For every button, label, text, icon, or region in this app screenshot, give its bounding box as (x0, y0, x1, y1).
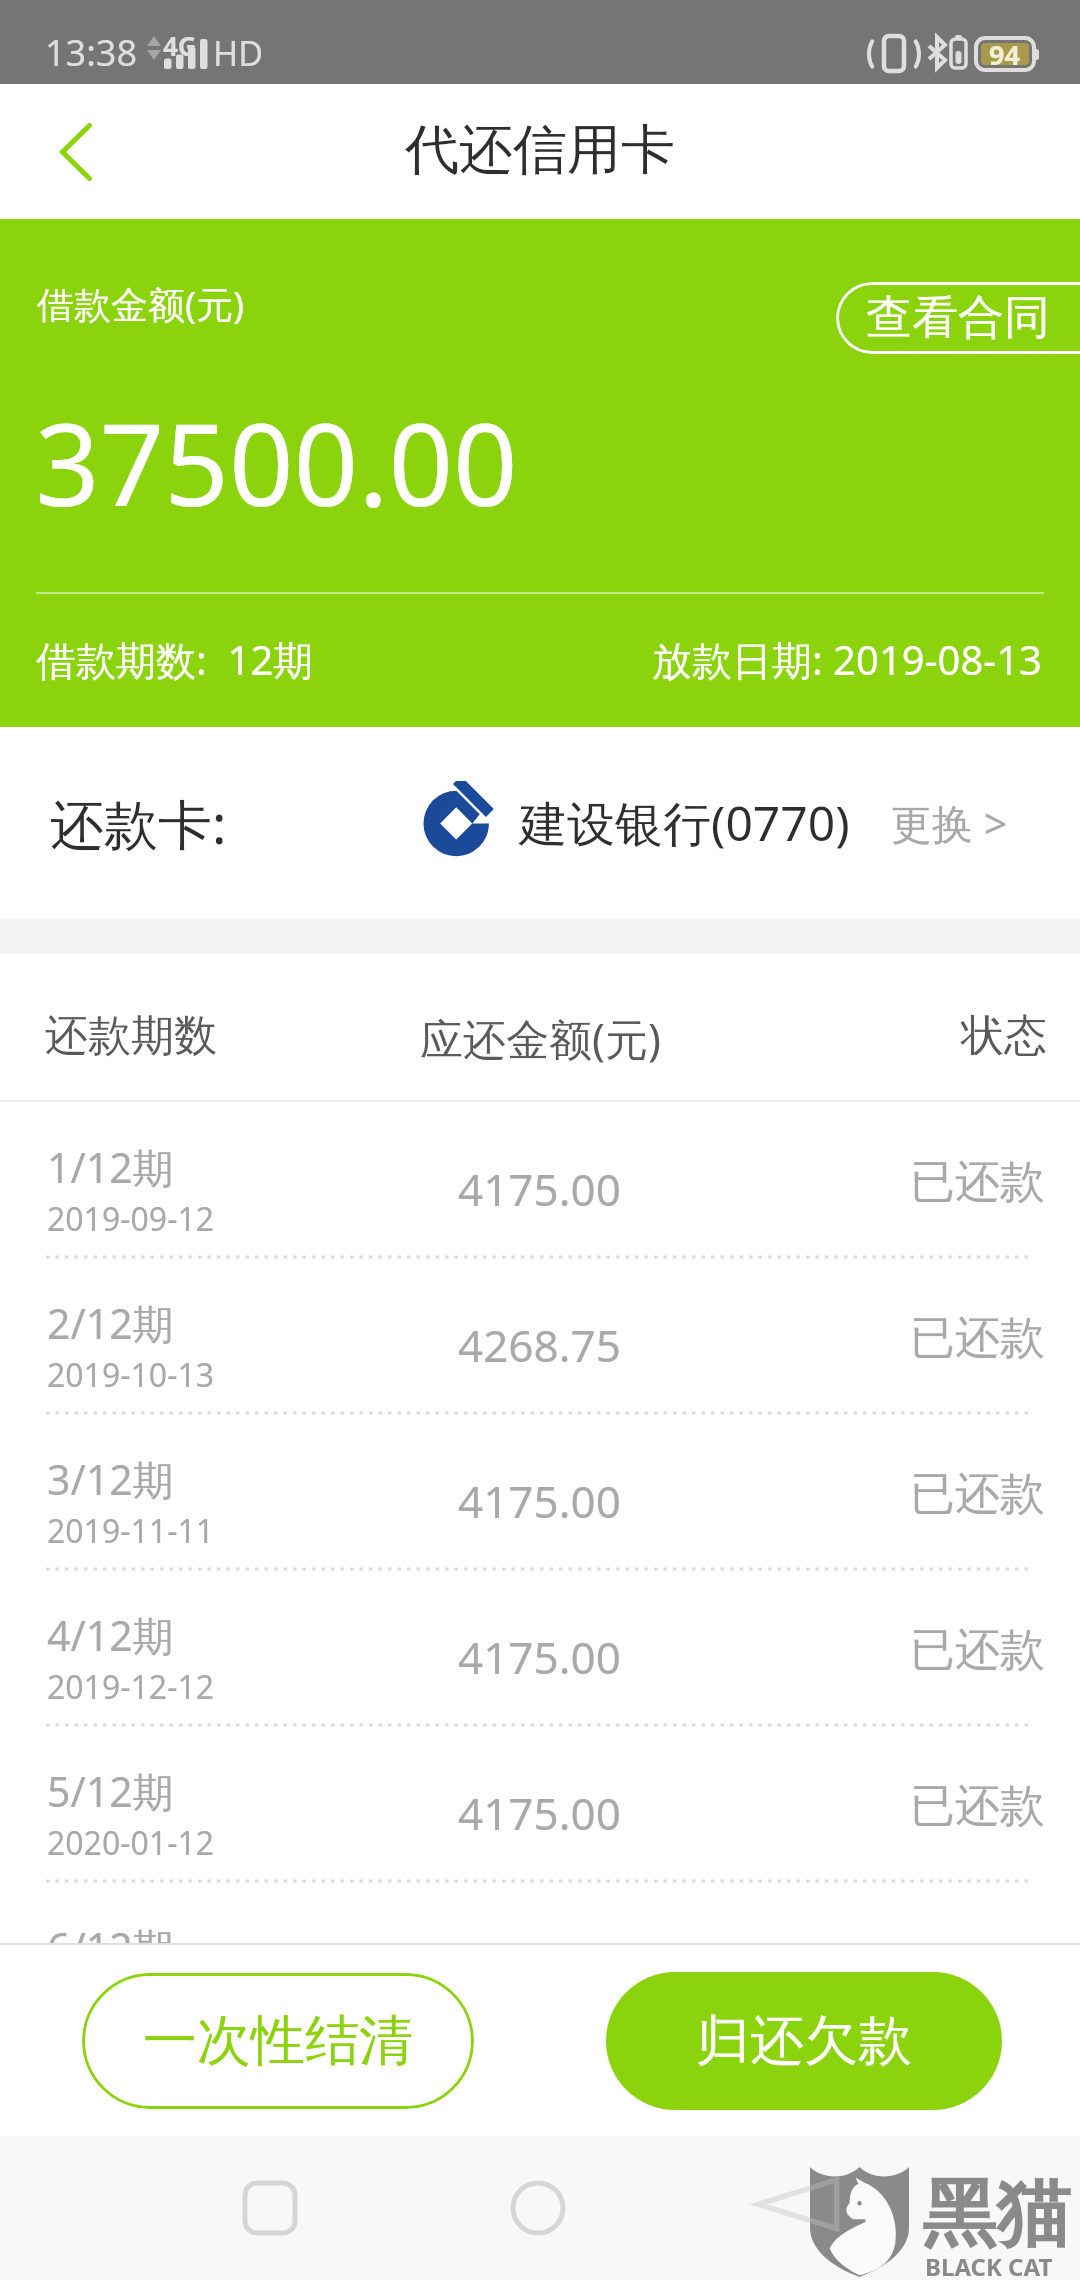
staticText: 2019-11-11 (47, 1509, 215, 1553)
staticText: 黑猫 (922, 2168, 1070, 2261)
button[interactable]: Home (486, 2156, 590, 2260)
staticText: 6/12期 (47, 1919, 174, 1944)
staticText: 2019-09-12 (47, 1197, 215, 1241)
button[interactable]: 一次性结清 (82, 1973, 474, 2109)
staticText: 4175.00 (458, 1627, 621, 1687)
staticText: 代还信用卡 (405, 116, 675, 184)
button[interactable]: 4/12期 (0, 1570, 1080, 1724)
button[interactable]: 5/12期 (0, 1726, 1080, 1880)
staticText: 借款金额(元) (37, 278, 245, 329)
staticText: 2020-01-12 (47, 1821, 215, 1865)
staticText: 已还款 (910, 1622, 1045, 1679)
button[interactable]: 3/12期 (0, 1414, 1080, 1568)
staticText: 更换 > (891, 795, 1008, 851)
staticText: 4175.00 (458, 1783, 621, 1843)
button[interactable]: 6/12期 (0, 1882, 1080, 1944)
staticText: 已还款 (910, 1778, 1045, 1835)
staticText: 一次性结清 (143, 2007, 413, 2075)
staticText: 94 (989, 36, 1020, 73)
button[interactable]: 归还欠款 (606, 1972, 1002, 2110)
staticText: 查看合同 (866, 289, 1050, 347)
staticText: 2019-10-13 (47, 1353, 215, 1397)
staticText: BLACK CAT (925, 2250, 1053, 2280)
staticText: 3/12期 (47, 1451, 174, 1507)
staticText: 已还款 (910, 1466, 1045, 1523)
button[interactable]: Back (14, 84, 138, 219)
staticText: 放款日期: 2019-08-13 (652, 632, 1042, 687)
staticText: 5/12期 (47, 1763, 174, 1819)
button[interactable]: Recents (218, 2156, 322, 2260)
staticText: 4268.75 (458, 1315, 621, 1375)
staticText: HD (213, 30, 264, 76)
button[interactable]: 1/12期 (0, 1102, 1080, 1256)
button[interactable]: 还款卡: (0, 727, 1080, 919)
staticText: 状态 (961, 1009, 1047, 1063)
staticText: 2/12期 (47, 1295, 174, 1351)
staticText: 13:38 (45, 28, 138, 77)
staticText: 4175.00 (458, 1471, 621, 1531)
button[interactable]: 查看合同 (836, 282, 1080, 354)
staticText: 应还金额(元) (420, 1009, 661, 1068)
button[interactable]: 2/12期 (0, 1258, 1080, 1412)
staticText: 1/12期 (47, 1139, 174, 1195)
staticText: 2019-12-12 (47, 1665, 215, 1709)
staticText: 4/12期 (47, 1607, 174, 1663)
staticText: 借款期数: 12期 (36, 632, 314, 687)
staticText: 已还款 (910, 1310, 1045, 1367)
staticText: 4175.00 (458, 1159, 621, 1219)
staticText: 4G (163, 28, 197, 63)
staticText: 还款期数 (45, 1009, 217, 1063)
staticText: 已还款 (910, 1154, 1045, 1211)
staticText: 还款卡: (50, 786, 227, 860)
staticText: 37500.00 (35, 385, 518, 539)
staticText: 建设银行(0770) (519, 790, 850, 856)
staticText: 归还欠款 (696, 2007, 912, 2075)
